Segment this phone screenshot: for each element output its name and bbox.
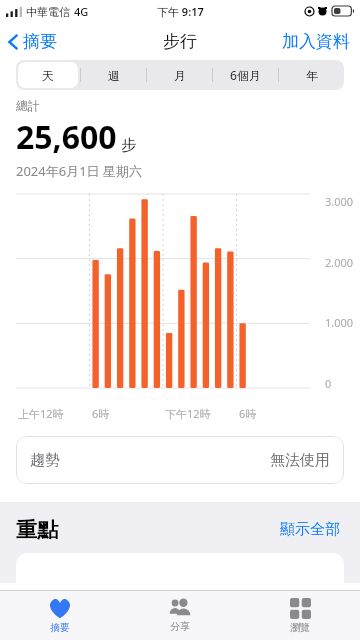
staticText: 2024年6月1日 星期六: [16, 162, 142, 180]
staticText: 2,000: [325, 255, 354, 267]
staticText: 中華電信: [26, 5, 70, 19]
button[interactable]: 顯示全部: [276, 516, 344, 543]
staticText: 6時: [92, 406, 110, 421]
staticText: 分享: [170, 620, 190, 633]
staticText: 摘要: [50, 621, 70, 634]
staticText: 摘要: [23, 31, 57, 52]
staticText: 6個月: [230, 67, 261, 83]
button[interactable]: 分享: [120, 591, 240, 640]
staticText: 下午 9:17: [157, 4, 204, 19]
button[interactable]: 6個月: [215, 62, 276, 88]
staticText: 25,600: [16, 115, 117, 159]
button[interactable]: 月: [149, 62, 210, 88]
staticText: 步行: [163, 31, 197, 52]
staticText: 0: [325, 376, 332, 388]
button[interactable]: 摘要: [0, 591, 120, 640]
button[interactable]: 加入資料: [272, 27, 360, 56]
staticText: 年: [306, 68, 318, 83]
button[interactable]: 趨勢: [16, 436, 344, 484]
staticText: 月: [174, 68, 186, 83]
staticText: 總計: [16, 98, 40, 113]
staticText: 瀏覽: [290, 621, 310, 634]
button[interactable]: 瀏覽: [240, 591, 360, 640]
button[interactable]: 週: [83, 62, 144, 88]
staticText: 天: [42, 68, 54, 83]
staticText: 趨勢: [30, 451, 60, 470]
staticText: 加入資料: [282, 31, 350, 52]
staticText: 重點: [16, 517, 58, 543]
button[interactable]: 摘要: [0, 27, 65, 56]
staticText: 下午12時: [165, 406, 211, 421]
staticText: 週: [108, 68, 120, 83]
staticText: 1,000: [325, 315, 354, 327]
staticText: 無法使用: [270, 451, 330, 470]
staticText: 3,000: [325, 194, 354, 206]
staticText: 顯示全部: [280, 520, 340, 539]
staticText: 步: [121, 136, 136, 155]
button[interactable]: 年: [281, 62, 342, 88]
staticText: 上午12時: [18, 406, 64, 421]
staticText: 6時: [239, 406, 257, 421]
staticText: 4G: [74, 4, 89, 19]
button[interactable]: 天: [18, 62, 78, 88]
